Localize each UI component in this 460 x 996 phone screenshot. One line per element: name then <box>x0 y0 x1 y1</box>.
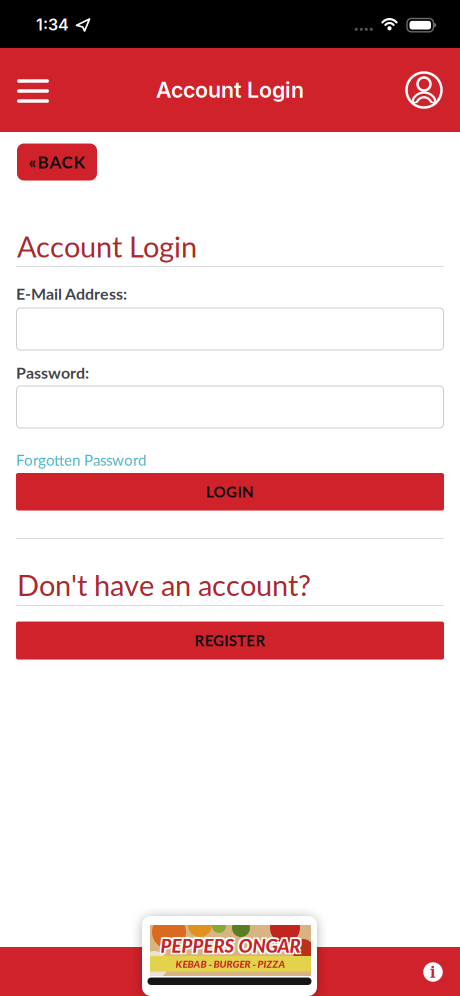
button[interactable]: Info <box>418 957 448 987</box>
button[interactable]: Menu <box>11 69 55 113</box>
button[interactable]: Forgotten Password <box>16 451 146 469</box>
staticText: 1:34 <box>36 15 69 34</box>
staticText: PEPPERS ONGAR <box>162 936 302 958</box>
staticText: LOGIN <box>206 483 254 501</box>
staticText: PEPPERS ONGAR <box>159 933 299 955</box>
staticText: PEPPERS ONGAR <box>162 933 302 955</box>
staticText: Don't have an account? <box>17 567 311 602</box>
staticText: Password: <box>16 363 89 382</box>
staticText: PEPPERS ONGAR <box>160 934 300 957</box>
staticText: PEPPERS ONGAR <box>159 936 299 958</box>
staticText: KEBAB - BURGER - PIZZA <box>175 958 285 970</box>
button[interactable]: LOGIN <box>16 473 444 510</box>
staticText: i <box>430 961 436 982</box>
button[interactable]: Account <box>402 68 446 112</box>
staticText: E-Mail Address: <box>16 284 127 303</box>
staticText: «BACK <box>28 152 85 172</box>
staticText: Forgotten Password <box>16 451 146 469</box>
button[interactable]: Back <box>17 143 97 180</box>
button[interactable]: Peppers Ongar <box>142 916 317 996</box>
staticText: Account Login <box>156 77 304 103</box>
staticText: Account Login <box>17 229 197 264</box>
button[interactable]: REGISTER <box>16 621 444 659</box>
staticText: REGISTER <box>194 631 266 649</box>
